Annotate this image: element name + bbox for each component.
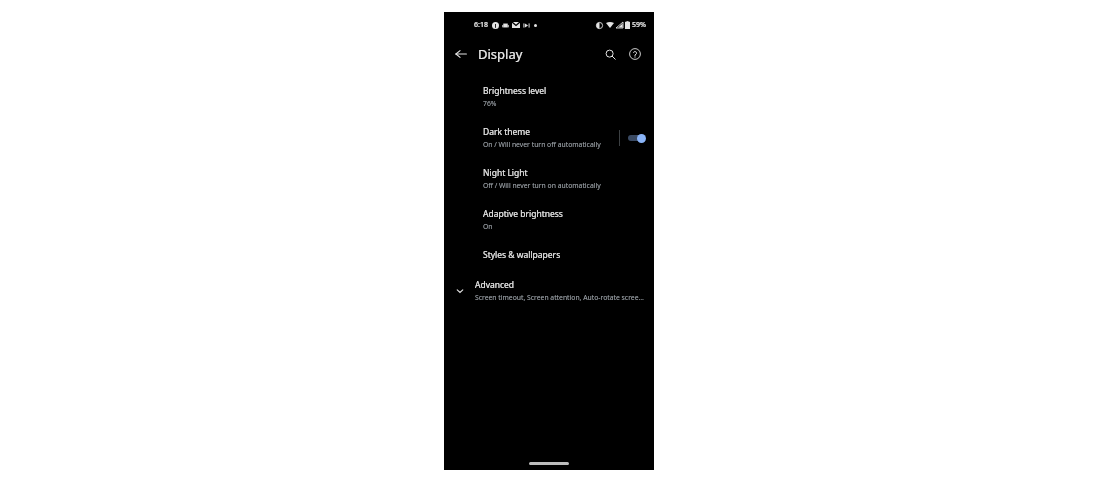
staticText: Dark theme bbox=[483, 126, 531, 138]
staticText: Styles & wallpapers bbox=[483, 249, 561, 261]
button[interactable]: Dark theme bbox=[444, 117, 654, 158]
button[interactable]: Back bbox=[450, 43, 472, 65]
button[interactable]: Styles & wallpapers bbox=[444, 240, 654, 270]
button[interactable]: Search bbox=[599, 43, 621, 65]
staticText: Advanced bbox=[475, 279, 515, 291]
button[interactable]: Brightness level bbox=[444, 76, 654, 117]
staticText: On bbox=[483, 222, 493, 231]
button[interactable]: Adaptive brightness bbox=[444, 199, 654, 240]
staticText: Off / Will never turn on automatically bbox=[483, 181, 601, 190]
button[interactable]: Help bbox=[624, 43, 646, 65]
staticText: 59% bbox=[632, 20, 646, 30]
staticText: 6:18 bbox=[474, 20, 488, 30]
staticText: Night Light bbox=[483, 167, 528, 179]
staticText: On / Will never turn off automatically bbox=[483, 140, 601, 149]
button[interactable]: Advanced bbox=[444, 270, 654, 311]
staticText: Screen timeout, Screen attention, Auto-r… bbox=[475, 293, 646, 302]
staticText: 76% bbox=[483, 99, 497, 108]
staticText: Brightness level bbox=[483, 85, 547, 97]
staticText: Display bbox=[478, 45, 523, 63]
button[interactable]: Night Light bbox=[444, 158, 654, 199]
button[interactable]: Dark theme toggle bbox=[626, 131, 646, 145]
staticText: Adaptive brightness bbox=[483, 208, 563, 220]
